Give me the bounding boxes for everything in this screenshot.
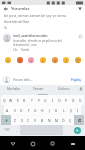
staticText: L [63, 108, 65, 113]
button[interactable]: Send [74, 127, 81, 134]
button[interactable]: J [46, 105, 53, 115]
staticText: C [27, 118, 30, 123]
staticText: H [41, 108, 44, 113]
button[interactable]: Merhaba [0, 85, 26, 93]
staticText: W [9, 98, 13, 103]
staticText: 14s [13, 48, 18, 52]
button[interactable]: Back [8, 139, 17, 148]
staticText: Merhaba [7, 87, 20, 91]
button[interactable]: Tamam [26, 85, 51, 93]
button[interactable]: N [46, 115, 53, 125]
button[interactable]: K [53, 105, 60, 115]
button[interactable]: A [4, 105, 11, 115]
button[interactable]: L [60, 105, 67, 115]
staticText: , [16, 128, 17, 132]
staticText: K [55, 108, 58, 113]
button[interactable]: P [63, 95, 70, 105]
button[interactable]: R [21, 95, 28, 105]
button[interactable]: Z [11, 115, 18, 125]
staticText: D [20, 108, 23, 113]
button[interactable]: Backspace [74, 115, 84, 125]
staticText: G [34, 108, 37, 113]
staticText: N [48, 118, 51, 123]
button[interactable]: İ [74, 105, 81, 115]
button[interactable]: Paylaş [70, 78, 82, 82]
button[interactable]: D [18, 105, 25, 115]
button[interactable]: , [13, 125, 20, 135]
button[interactable]: Emoji reaction [27, 56, 34, 63]
staticText: Ö [62, 118, 65, 123]
staticText: E [17, 98, 19, 103]
button[interactable]: ?123 [1, 125, 13, 135]
staticText: A [6, 108, 9, 113]
button[interactable]: mail_uzattıklarımızdan [0, 32, 85, 54]
button[interactable]: Yanıtla [21, 48, 30, 52]
button[interactable]: Voice input [76, 85, 85, 93]
button[interactable]: Emoji reaction [4, 56, 11, 63]
button[interactable]: U [42, 95, 49, 105]
staticText: U [44, 98, 47, 103]
button[interactable]: M [53, 115, 60, 125]
button[interactable]: H [39, 105, 46, 115]
button[interactable]: F [25, 105, 32, 115]
button[interactable]: C [25, 115, 32, 125]
staticText: . [66, 128, 67, 132]
button[interactable]: Filter [76, 5, 83, 12]
staticText: V [34, 118, 37, 123]
staticText: Yorum ekle... [13, 78, 33, 82]
button[interactable]: Ü [77, 95, 84, 105]
staticText: İ [77, 108, 79, 113]
button[interactable]: W [7, 95, 14, 105]
staticText: O [58, 98, 61, 103]
button[interactable]: G [32, 105, 39, 115]
button[interactable]: S [11, 105, 18, 115]
button[interactable]: E [14, 95, 21, 105]
button[interactable]: T [28, 95, 35, 105]
staticText: mail_uzattıklarımızdan [13, 34, 48, 38]
staticText: S [14, 108, 16, 113]
staticText: düzenlendi filan [4, 19, 30, 24]
staticText: bir post, zaman zaman bir şey ve sonra [4, 13, 66, 18]
button[interactable]: Ç [67, 115, 74, 125]
staticText: Tamam [33, 87, 44, 91]
staticText: Ü [79, 98, 82, 103]
staticText: Paylaş [71, 78, 81, 82]
button[interactable]: O [56, 95, 63, 105]
staticText: Ç [69, 118, 72, 123]
button[interactable]: B [39, 115, 46, 125]
staticText: R [23, 98, 26, 103]
button[interactable]: Like [78, 34, 82, 38]
button[interactable]: Emoji reaction [16, 56, 23, 63]
button[interactable]: Recent apps [48, 139, 57, 148]
button[interactable]: Y [35, 95, 42, 105]
button[interactable]: Emoji reaction [62, 56, 69, 63]
staticText: T [31, 98, 33, 103]
button[interactable]: Back [2, 5, 9, 12]
staticText: buzerdler, elimde ve popüleri orkel [13, 39, 62, 43]
button[interactable]: Ğ [70, 95, 77, 105]
staticText: Kullanıcı [58, 87, 70, 91]
button[interactable]: Ş [67, 105, 74, 115]
button[interactable]: X [18, 115, 25, 125]
button[interactable]: Yorum ekle... [13, 78, 70, 82]
button[interactable]: Home [28, 139, 37, 148]
staticText: X [21, 118, 23, 123]
button[interactable]: V [32, 115, 39, 125]
button[interactable]: Kullanıcı [51, 85, 76, 93]
staticText: F [28, 108, 30, 113]
button[interactable]: Keyboard [68, 139, 77, 148]
staticText: P [65, 98, 68, 103]
staticText: B [41, 118, 44, 123]
staticText: ?123 [4, 128, 10, 132]
button[interactable]: Shift [1, 115, 11, 125]
staticText: I [52, 98, 54, 103]
button[interactable]: Emoji reaction [51, 56, 58, 63]
staticText: Ş [70, 108, 72, 113]
button[interactable]: Ö [60, 115, 67, 125]
button[interactable]: Emoji reaction [74, 56, 81, 63]
button[interactable]: I [49, 95, 56, 105]
button[interactable]: Q [1, 95, 7, 105]
button[interactable]: Emoji reaction [39, 56, 46, 63]
